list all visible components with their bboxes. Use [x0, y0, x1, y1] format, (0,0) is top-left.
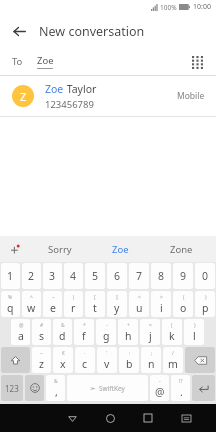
- button[interactable]: Shift: [1, 347, 30, 373]
- button[interactable]: Enter: [192, 375, 215, 401]
- staticText: 2: [28, 269, 35, 283]
- button[interactable]: Home: [91, 404, 129, 432]
- button[interactable]: 8: [151, 263, 171, 289]
- button[interactable]: 0: [195, 263, 215, 289]
- staticText: &: [61, 322, 65, 329]
- button[interactable]: ]: [107, 291, 127, 317]
- staticText: r: [71, 301, 76, 315]
- button[interactable]: >: [151, 291, 171, 317]
- button[interactable]: 1: [1, 263, 20, 289]
- staticText: j: [149, 329, 152, 343]
- button[interactable]: Add: [0, 236, 30, 262]
- button[interactable]: Sorry: [30, 236, 90, 262]
- button[interactable]: (: [162, 319, 182, 345]
- staticText: ~: [40, 350, 43, 357]
- button[interactable]: =: [140, 319, 160, 345]
- staticText: k: [169, 329, 175, 343]
- button[interactable]: 4: [64, 263, 83, 289]
- staticText: 9: [180, 269, 187, 283]
- staticText: /: [172, 350, 174, 357]
- button[interactable]: Zone: [151, 236, 212, 262]
- staticText: c: [82, 357, 88, 371]
- staticText: a: [18, 329, 24, 343]
- button[interactable]: 5: [85, 263, 105, 289]
- staticText: Taylor: [64, 82, 97, 96]
- staticText: 10:00: [193, 2, 211, 12]
- staticText: ·: [84, 350, 86, 357]
- staticText: ): [205, 294, 207, 301]
- button[interactable]: !?: [171, 375, 190, 401]
- staticText: i: [160, 301, 163, 315]
- staticText: -: [106, 322, 108, 329]
- button[interactable]: ^: [22, 291, 41, 317]
- button[interactable]: ~: [43, 291, 62, 317]
- button[interactable]: Backspace: [185, 347, 215, 373]
- button[interactable]: +: [118, 319, 138, 345]
- staticText: w: [27, 301, 36, 315]
- button[interactable]: |: [64, 291, 83, 317]
- button[interactable]: #: [32, 319, 51, 345]
- button[interactable]: %: [1, 291, 20, 317]
- button[interactable]: 2: [22, 263, 41, 289]
- staticText: .: [180, 385, 183, 399]
- button[interactable]: -: [150, 375, 169, 401]
- button[interactable]: @: [11, 319, 30, 345]
- staticText: €: [62, 350, 65, 357]
- button[interactable]: Emoji: [25, 375, 44, 401]
- staticText: (: [171, 322, 173, 329]
- button[interactable]: Recents: [129, 404, 167, 432]
- staticText: 7: [136, 269, 143, 283]
- staticText: 1: [7, 269, 14, 283]
- button[interactable]: Z: [0, 76, 216, 116]
- button[interactable]: ·: [75, 347, 95, 373]
- button[interactable]: Zoe: [90, 236, 151, 262]
- button[interactable]: 3: [43, 263, 62, 289]
- staticText: 5: [92, 269, 99, 283]
- button[interactable]: ;: [141, 347, 161, 373]
- staticText: Zoe: [45, 82, 64, 96]
- button[interactable]: ~: [32, 347, 51, 373]
- button[interactable]: Numbers: [1, 375, 23, 401]
- button[interactable]: 6: [107, 263, 127, 289]
- staticText: Sorry: [48, 243, 72, 256]
- staticText: Z: [20, 89, 27, 104]
- staticText: o: [180, 301, 187, 315]
- button[interactable]: -: [96, 319, 116, 345]
- staticText: t: [93, 301, 97, 315]
- staticText: ^: [30, 294, 33, 301]
- button[interactable]: Back: [53, 404, 91, 432]
- button[interactable]: ): [184, 319, 204, 345]
- staticText: g: [103, 329, 110, 343]
- staticText: ]: [116, 294, 118, 301]
- button[interactable]: *: [74, 319, 94, 345]
- button[interactable]: [: [85, 291, 105, 317]
- button[interactable]: /: [163, 347, 183, 373]
- button[interactable]: ': [97, 347, 117, 373]
- staticText: s: [39, 329, 45, 343]
- button[interactable]: 9: [173, 263, 193, 289]
- button[interactable]: 7: [129, 263, 149, 289]
- button[interactable]: Space: [67, 375, 148, 401]
- staticText: <: [138, 294, 141, 301]
- staticText: x: [60, 357, 66, 371]
- button[interactable]: ): [195, 291, 215, 317]
- button[interactable]: Dialpad: [187, 52, 207, 72]
- button[interactable]: <: [129, 291, 149, 317]
- staticText: m: [168, 357, 178, 371]
- staticText: f: [82, 329, 86, 343]
- button[interactable]: Menu: [167, 404, 205, 432]
- staticText: 3: [49, 269, 56, 283]
- staticText: Zoe: [37, 54, 54, 67]
- staticText: New conversation: [39, 23, 145, 40]
- staticText: l: [193, 329, 196, 343]
- button[interactable]: :: [119, 347, 139, 373]
- staticText: Mobile: [177, 90, 205, 102]
- button[interactable]: €: [53, 347, 73, 373]
- button[interactable]: &: [53, 319, 72, 345]
- staticText: h: [125, 329, 132, 343]
- button[interactable]: &: [46, 375, 65, 401]
- staticText: v: [104, 357, 110, 371]
- button[interactable]: Back: [8, 20, 30, 42]
- staticText: z: [39, 357, 44, 371]
- button[interactable]: (: [173, 291, 193, 317]
